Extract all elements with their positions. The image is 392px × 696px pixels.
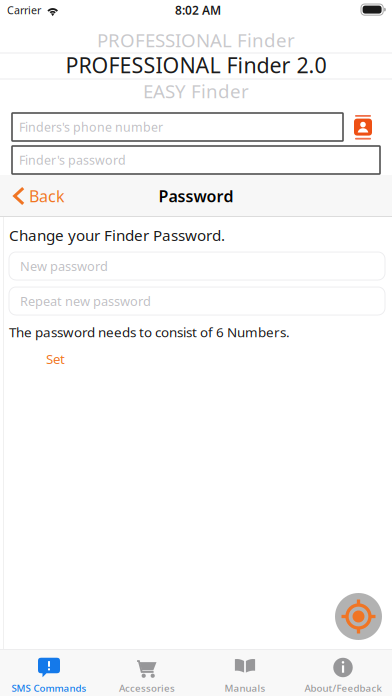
staticText: Manuals xyxy=(224,681,265,695)
button[interactable]: Back xyxy=(0,175,77,217)
staticText: 8:02 AM xyxy=(175,2,221,18)
staticText: EASY Finder xyxy=(143,78,249,104)
staticText: About/Feedback xyxy=(304,681,381,695)
staticText: PROFESSIONAL Finder xyxy=(97,27,295,53)
staticText: Finder's password xyxy=(19,152,126,168)
button[interactable]: Accessories xyxy=(98,649,196,696)
button[interactable]: SMS Commands xyxy=(0,649,98,696)
staticText: Carrier xyxy=(7,3,41,17)
staticText: Finders's phone number xyxy=(19,119,163,135)
staticText: Accessories xyxy=(119,681,175,695)
staticText: The password needs to consist of 6 Numbe… xyxy=(9,323,290,341)
staticText: Set xyxy=(46,350,65,368)
button[interactable]: Set xyxy=(0,0,94,370)
staticText: Back xyxy=(29,185,65,207)
staticText: Password xyxy=(158,185,233,207)
staticText: Change your Finder Password. xyxy=(9,225,225,245)
staticText: New password xyxy=(20,257,108,275)
button[interactable]: Choose from contacts xyxy=(354,115,372,140)
staticText: SMS Commands xyxy=(11,681,86,695)
button[interactable]: Manuals xyxy=(196,649,294,696)
staticText: Repeat new password xyxy=(20,292,151,310)
button[interactable]: About/Feedback xyxy=(294,649,392,696)
button[interactable]: Locate device xyxy=(335,593,382,640)
staticText: PROFESSIONAL Finder 2.0 xyxy=(65,50,326,79)
